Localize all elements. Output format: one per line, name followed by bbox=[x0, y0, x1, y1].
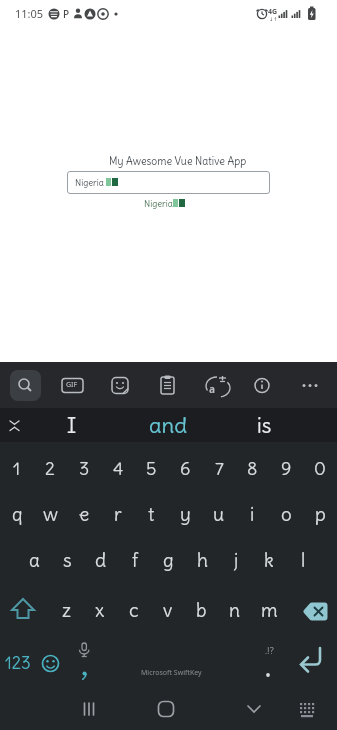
button[interactable]: t bbox=[135, 492, 167, 536]
button[interactable] bbox=[200, 370, 231, 401]
button[interactable] bbox=[153, 370, 184, 401]
button[interactable] bbox=[2, 590, 44, 632]
button[interactable]: u bbox=[203, 492, 235, 536]
staticText: g bbox=[163, 548, 174, 572]
button[interactable] bbox=[101, 637, 235, 690]
button[interactable] bbox=[36, 647, 66, 681]
button[interactable]: j bbox=[220, 538, 252, 582]
staticText: 4 bbox=[113, 457, 124, 480]
button[interactable]: 5 bbox=[135, 446, 167, 490]
button[interactable]: I bbox=[28, 408, 116, 442]
button[interactable]: 4 bbox=[102, 446, 134, 490]
button[interactable] bbox=[248, 370, 279, 401]
staticText: q bbox=[12, 502, 23, 526]
staticText: 7 bbox=[215, 457, 224, 480]
button[interactable]: y bbox=[169, 492, 201, 536]
button[interactable]: e bbox=[68, 492, 100, 536]
staticText: 0 bbox=[314, 457, 326, 480]
button[interactable]: d bbox=[85, 538, 117, 582]
staticText: 2 bbox=[45, 457, 55, 480]
staticText: Microsoft SwiftKey bbox=[141, 668, 202, 678]
button[interactable]: m bbox=[253, 588, 285, 632]
button[interactable] bbox=[10, 370, 41, 401]
staticText: p bbox=[315, 502, 326, 526]
button[interactable]: q bbox=[1, 492, 33, 536]
button[interactable]: i bbox=[236, 492, 268, 536]
button[interactable]: c bbox=[118, 588, 150, 632]
staticText: 4G bbox=[268, 7, 278, 17]
staticText: My Awesome Vue Native App bbox=[109, 155, 247, 168]
staticText: 5 bbox=[146, 457, 157, 480]
button[interactable]: a bbox=[18, 538, 50, 582]
staticText: a bbox=[209, 382, 215, 396]
button[interactable]: k bbox=[253, 538, 285, 582]
button[interactable] bbox=[295, 370, 326, 401]
button[interactable] bbox=[234, 692, 274, 728]
staticText: and bbox=[149, 411, 188, 439]
button[interactable]: is bbox=[220, 408, 308, 442]
button[interactable] bbox=[67, 637, 101, 690]
button[interactable] bbox=[290, 696, 326, 730]
staticText: x bbox=[95, 598, 105, 622]
staticText: t bbox=[148, 502, 155, 526]
button[interactable]: p bbox=[304, 492, 336, 536]
button[interactable]: l bbox=[287, 538, 319, 582]
staticText: v bbox=[163, 598, 173, 622]
button[interactable]: 0 bbox=[304, 446, 336, 490]
button[interactable]: b bbox=[185, 588, 217, 632]
button[interactable]: x bbox=[84, 588, 116, 632]
button[interactable]: f bbox=[119, 538, 151, 582]
button[interactable]: 3 bbox=[68, 446, 100, 490]
staticText: w bbox=[43, 502, 58, 526]
button[interactable]: z bbox=[51, 588, 83, 632]
button[interactable] bbox=[294, 590, 336, 632]
button[interactable]: o bbox=[270, 492, 302, 536]
button[interactable]: g bbox=[152, 538, 184, 582]
staticText: 11:05 bbox=[15, 6, 44, 21]
staticText: 123 bbox=[5, 652, 31, 673]
staticText: y bbox=[180, 502, 191, 526]
staticText: 8 bbox=[247, 457, 258, 480]
staticText: P bbox=[63, 7, 70, 21]
staticText: z bbox=[62, 598, 72, 622]
staticText: m bbox=[261, 598, 278, 622]
button[interactable] bbox=[58, 370, 89, 401]
staticText: a bbox=[29, 548, 40, 572]
button[interactable]: s bbox=[51, 538, 83, 582]
button[interactable]: 1 bbox=[1, 446, 33, 490]
button[interactable]: v bbox=[152, 588, 184, 632]
button[interactable]: and bbox=[124, 408, 212, 442]
staticText: r bbox=[114, 502, 122, 526]
button[interactable] bbox=[70, 692, 110, 728]
staticText: 9 bbox=[281, 457, 292, 480]
button[interactable] bbox=[235, 637, 302, 690]
button[interactable]: 8 bbox=[236, 446, 268, 490]
staticText: I bbox=[67, 412, 77, 438]
button[interactable] bbox=[105, 370, 136, 401]
button[interactable]: r bbox=[102, 492, 134, 536]
button[interactable] bbox=[294, 647, 334, 681]
staticText: j bbox=[234, 548, 239, 572]
staticText: e bbox=[79, 502, 90, 526]
button[interactable] bbox=[10, 370, 41, 401]
button[interactable]: 6 bbox=[169, 446, 201, 490]
staticText: c bbox=[129, 598, 139, 622]
staticText: b bbox=[196, 598, 207, 622]
button[interactable]: n bbox=[219, 588, 251, 632]
staticText: .!? bbox=[265, 644, 274, 657]
button[interactable]: h bbox=[186, 538, 218, 582]
button[interactable]: 7 bbox=[203, 446, 235, 490]
staticText: i bbox=[250, 502, 255, 526]
button[interactable] bbox=[146, 692, 186, 728]
button[interactable]: 9 bbox=[270, 446, 302, 490]
staticText: o bbox=[281, 502, 292, 526]
button[interactable]: w bbox=[34, 492, 66, 536]
staticText: s bbox=[63, 548, 72, 572]
button[interactable]: 2 bbox=[34, 446, 66, 490]
staticText: h bbox=[197, 548, 208, 572]
button[interactable] bbox=[2, 647, 36, 681]
button[interactable]: Nigeria bbox=[67, 171, 270, 194]
staticText: is bbox=[257, 412, 272, 438]
staticText: n bbox=[229, 598, 241, 622]
staticText: GIF bbox=[66, 380, 78, 390]
